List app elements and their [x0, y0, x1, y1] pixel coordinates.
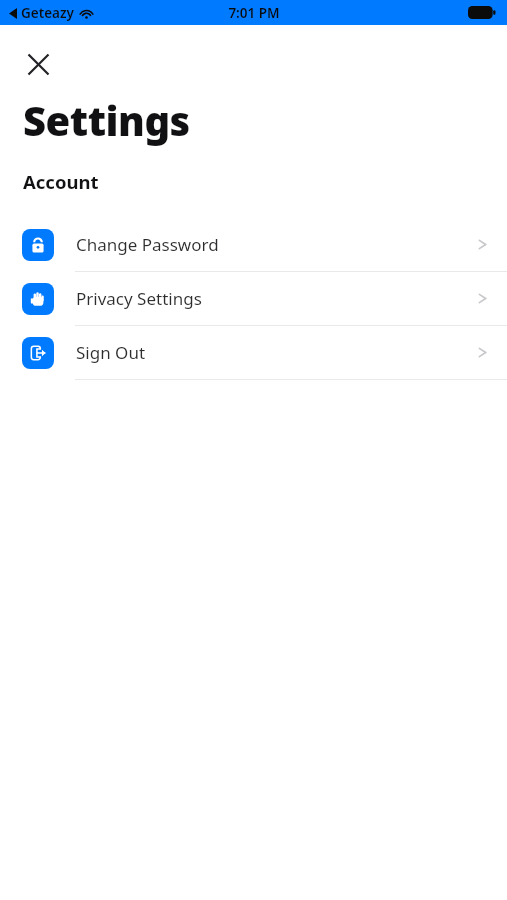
button[interactable]: Change Password — [0, 218, 507, 272]
staticText: Settings — [23, 93, 190, 147]
button[interactable]: Sign Out — [0, 326, 507, 380]
staticText: Privacy Settings — [76, 287, 478, 310]
staticText: 7:01 PM — [228, 4, 280, 22]
button[interactable]: Privacy Settings — [0, 272, 507, 326]
staticText: Account — [23, 169, 99, 194]
button[interactable]: Close — [17, 43, 59, 85]
staticText: Geteazy — [21, 4, 74, 22]
staticText: Sign Out — [76, 341, 478, 364]
staticText: Change Password — [76, 233, 478, 256]
